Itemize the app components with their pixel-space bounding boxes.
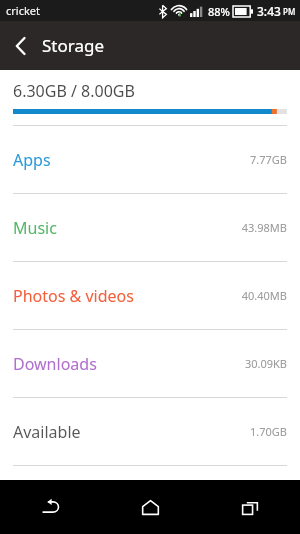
staticText: Available — [13, 421, 250, 443]
staticText: Downloads — [13, 353, 244, 375]
staticText: Apps — [13, 149, 250, 171]
staticText: 43.98MB — [241, 220, 287, 235]
staticText: 1.70GB — [250, 424, 287, 439]
button[interactable]: Music — [0, 194, 300, 261]
staticText: Photos & videos — [13, 285, 241, 307]
button[interactable]: Photos & videos — [0, 262, 300, 329]
button[interactable]: Recent apps — [200, 480, 300, 534]
staticText: 40.40MB — [241, 288, 287, 303]
button[interactable]: Apps — [0, 126, 300, 193]
button[interactable]: Back — [0, 480, 100, 534]
staticText: PM — [283, 6, 296, 17]
staticText: 7.77GB — [250, 152, 287, 167]
staticText: 30.09KB — [244, 356, 287, 371]
button[interactable]: Back — [0, 21, 42, 70]
button[interactable]: Available — [0, 398, 300, 465]
staticText: Storage — [42, 34, 105, 57]
staticText: cricket — [6, 3, 40, 18]
staticText: Music — [13, 217, 241, 239]
staticText: 3:43 — [257, 3, 281, 19]
button[interactable]: Downloads — [0, 330, 300, 397]
staticText: 6.30GB / 8.00GB — [13, 80, 135, 102]
button[interactable]: Home — [100, 480, 200, 534]
staticText: 88% — [208, 4, 230, 19]
